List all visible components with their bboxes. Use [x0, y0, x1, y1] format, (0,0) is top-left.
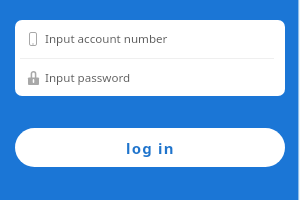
staticText: log in: [126, 138, 175, 158]
staticText: Input account number: [45, 31, 168, 47]
button[interactable]: log in: [15, 128, 285, 167]
staticText: Input password: [45, 70, 131, 86]
button[interactable]: Input account number: [15, 20, 285, 58]
button[interactable]: Input password: [15, 59, 285, 96]
